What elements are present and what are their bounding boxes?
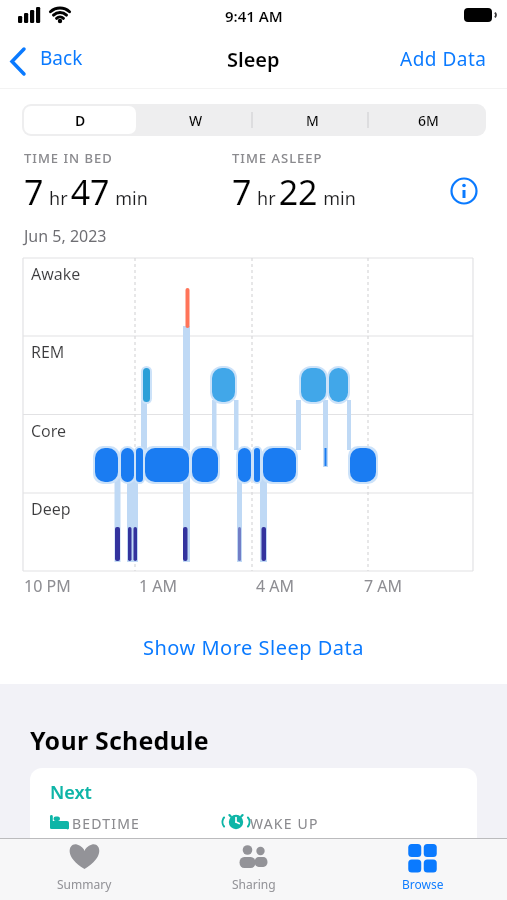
staticText: Your Schedule (30, 723, 209, 757)
button[interactable]: Back (4, 44, 104, 78)
staticText: Awake (31, 263, 81, 285)
staticText: W (189, 111, 203, 130)
staticText: WAKE UP (250, 814, 319, 833)
button[interactable]: M (254, 104, 370, 136)
staticText: 7 hr 47 min (24, 169, 148, 215)
button[interactable] (448, 175, 480, 207)
button[interactable]: Browse (338, 838, 507, 900)
staticText: Deep (31, 498, 71, 520)
staticText: 7 AM (364, 575, 403, 597)
staticText: TIME IN BED (24, 149, 113, 167)
staticText: 1 AM (139, 575, 178, 597)
staticText: TIME ASLEEP (232, 149, 323, 167)
button[interactable]: W (138, 104, 254, 136)
staticText: Browse (402, 876, 444, 892)
staticText: 10 PM (24, 575, 71, 597)
staticText: BEDTIME (72, 814, 141, 833)
button[interactable]: D (22, 104, 138, 136)
staticText: 7 hr 22 min (232, 169, 356, 215)
staticText: REM (31, 341, 65, 363)
staticText: M (306, 111, 319, 130)
staticText: Sleep (227, 46, 280, 73)
staticText: Next (50, 780, 92, 805)
button[interactable]: Summary (0, 838, 169, 900)
staticText: 9:41 AM (225, 6, 283, 26)
button[interactable]: Show More Sleep Data (0, 632, 507, 662)
staticText: Back (40, 45, 83, 71)
staticText: Add Data (400, 46, 487, 72)
staticText: Show More Sleep Data (143, 634, 364, 661)
staticText: D (75, 111, 86, 130)
staticText: Sharing (232, 876, 276, 892)
button[interactable]: 6M (370, 104, 486, 136)
staticText: Summary (57, 876, 112, 892)
staticText: Jun 5, 2023 (24, 225, 107, 247)
staticText: 4 AM (256, 575, 295, 597)
button[interactable]: Add Data (367, 44, 497, 74)
staticText: Core (31, 420, 67, 442)
button[interactable]: Sharing (169, 838, 338, 900)
button[interactable]: Next (30, 768, 477, 838)
staticText: 6M (418, 111, 439, 130)
